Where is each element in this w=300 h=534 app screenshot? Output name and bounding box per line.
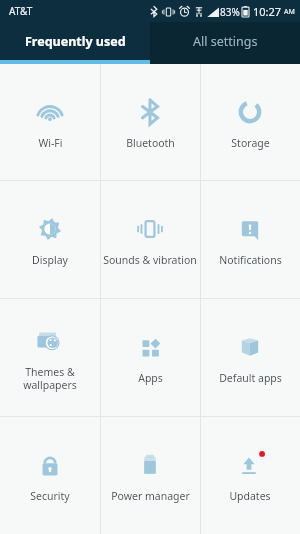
button[interactable]: Wi-Fi <box>0 64 100 180</box>
button[interactable]: Storage <box>200 64 300 180</box>
button[interactable]: Default apps <box>200 299 300 416</box>
button[interactable]: Sounds & vibration <box>100 181 200 298</box>
button[interactable]: Frequently used <box>0 22 150 60</box>
staticText: Bluetooth <box>126 136 175 150</box>
staticText: Notifications <box>219 253 282 267</box>
button[interactable]: Themes & wallpapers <box>0 299 100 416</box>
staticText: Default apps <box>219 371 282 385</box>
staticText: AT&T <box>9 4 33 18</box>
staticText: Apps <box>138 371 163 385</box>
button[interactable]: Power manager <box>100 417 200 534</box>
button[interactable]: Notifications <box>200 181 300 298</box>
button[interactable]: Apps <box>100 299 200 416</box>
staticText: Themes & wallpapers <box>23 365 77 392</box>
button[interactable]: Security <box>0 417 100 534</box>
staticText: 83% <box>220 5 240 19</box>
staticText: Frequently used <box>25 33 126 50</box>
staticText: Security <box>30 489 70 503</box>
staticText: AM <box>284 7 295 17</box>
staticText: Display <box>32 253 68 267</box>
button[interactable]: Display <box>0 181 100 298</box>
button[interactable]: Bluetooth <box>100 64 200 180</box>
staticText: Updates <box>229 489 271 503</box>
staticText: 10:27 <box>253 4 282 19</box>
staticText: Storage <box>231 136 270 150</box>
button[interactable]: Updates <box>200 417 300 534</box>
staticText: Power manager <box>111 489 190 503</box>
staticText: Sounds & vibration <box>103 253 197 267</box>
staticText: Wi-Fi <box>38 136 63 150</box>
staticText: All settings <box>193 33 258 50</box>
button[interactable]: All settings <box>150 22 300 60</box>
